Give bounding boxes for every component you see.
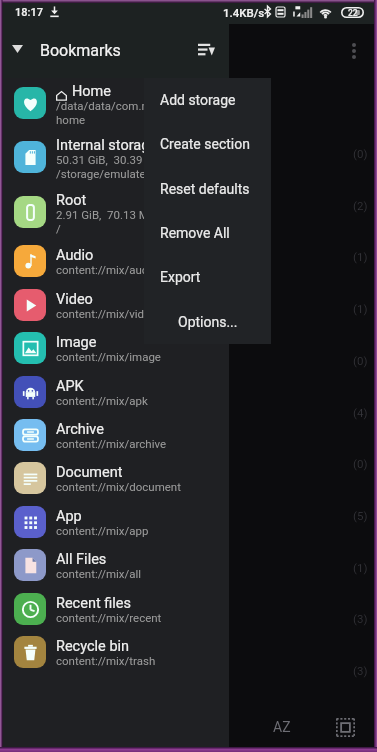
button[interactable]: Sort (192, 36, 220, 62)
staticText: (4) (353, 406, 368, 419)
staticText: Home (72, 83, 112, 100)
button[interactable]: Create section (144, 122, 271, 166)
button[interactable]: More options (338, 33, 370, 69)
staticText: (2) (353, 199, 368, 212)
staticText: 50.31 GiB, 30.39 (56, 153, 143, 166)
staticText: Options... (178, 314, 238, 330)
button[interactable]: Video (0, 283, 229, 326)
button[interactable]: Export (144, 255, 271, 299)
staticText: Root (56, 192, 87, 209)
staticText: Reset defaults (160, 181, 250, 197)
button[interactable]: Remove All (144, 211, 271, 255)
staticText: content://mix/aud (56, 263, 149, 276)
staticText: Create section (160, 136, 250, 152)
staticText: (0) (353, 457, 368, 470)
staticText: (5) (353, 509, 368, 522)
staticText: (0) (353, 354, 368, 367)
button[interactable]: Internal storage (0, 130, 229, 184)
button[interactable]: Document (0, 456, 229, 499)
staticText: / (56, 222, 61, 235)
button[interactable]: Add storage (144, 78, 271, 122)
staticText: (1) (353, 561, 368, 574)
button[interactable]: Recent files (0, 587, 229, 630)
staticText: App (56, 508, 82, 525)
button[interactable]: App (0, 500, 229, 543)
staticText: (3) (353, 664, 368, 677)
staticText: Recycle bin (56, 638, 130, 655)
staticText: Archive (56, 421, 104, 438)
staticText: (1) (353, 302, 368, 315)
staticText: content://mix/document (56, 480, 181, 493)
staticText: (3) (353, 612, 368, 625)
staticText: (1) (353, 250, 368, 263)
staticText: Export (160, 269, 201, 285)
staticText: Audio (56, 247, 94, 264)
staticText: /data/data/com.m (56, 99, 152, 112)
staticText: content://mix/app (56, 524, 149, 537)
button[interactable]: AZ (263, 710, 301, 744)
button[interactable]: Expand bookmarks (6, 37, 29, 60)
staticText: Recent files (56, 595, 131, 612)
button[interactable]: Recycle bin (0, 630, 229, 673)
staticText: Image (56, 334, 97, 351)
staticText: content://mix/all (56, 567, 142, 580)
staticText: /storage/emulate (56, 167, 146, 180)
staticText: 18:17 (15, 6, 43, 19)
button[interactable]: Home (0, 76, 229, 130)
button[interactable]: All Files (0, 543, 229, 586)
staticText: Internal storage (56, 137, 158, 154)
button[interactable]: Audio (0, 239, 229, 282)
button[interactable]: Reset defaults (144, 167, 271, 211)
staticText: 1.4KB/s (223, 6, 265, 19)
staticText: (0) (353, 147, 368, 160)
staticText: content://mix/apk (56, 394, 148, 407)
staticText: APK (56, 378, 84, 395)
button[interactable]: Select items (327, 710, 364, 744)
staticText: content://mix/vid (56, 307, 145, 320)
button[interactable]: Image (0, 326, 229, 369)
button[interactable]: Root (0, 185, 229, 239)
button[interactable]: Options... (144, 300, 271, 344)
staticText: content://mix/recent (56, 611, 162, 624)
staticText: content://mix/image (56, 350, 161, 363)
button[interactable]: APK (0, 370, 229, 413)
staticText: Document (56, 464, 123, 481)
staticText: home (56, 113, 86, 126)
staticText: All Files (56, 551, 107, 568)
staticText: content://mix/archive (56, 437, 167, 450)
staticText: Add storage (160, 92, 236, 108)
button[interactable]: Archive (0, 413, 229, 456)
staticText: 22 (348, 8, 358, 18)
staticText: 2.91 GiB, 70.13 M (56, 208, 149, 221)
staticText: Bookmarks (40, 41, 121, 60)
staticText: AZ (273, 719, 291, 735)
staticText: Remove All (160, 225, 230, 241)
staticText: content://mix/trash (56, 654, 156, 667)
staticText: Video (56, 291, 93, 308)
